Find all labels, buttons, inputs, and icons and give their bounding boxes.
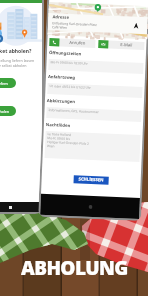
staticText: Anfahrtsweg (48, 74, 75, 81)
staticText: Paket abholen? (0, 48, 32, 55)
button[interactable]: Liefern (0, 78, 16, 88)
staticText: U1 oder 49/22 bis U1/22 Uhr (49, 84, 92, 90)
button[interactable]: SCHLIESSEN (73, 175, 109, 185)
staticText: SCHLIESSEN (78, 176, 104, 183)
staticText: Entlastung Karl-Dresden-Platz Café Wien (52, 21, 97, 31)
staticText: Mo-Fr 09:00 bis 18:00 Uhr (50, 60, 89, 66)
staticText: E-Mail (120, 42, 132, 48)
button[interactable]: Le Torte Holland Mo-Fr, 09:00 bis Heilig… (44, 131, 140, 162)
staticText: Abholen (0, 109, 10, 114)
button[interactable]: Abholen (0, 106, 16, 116)
staticText: Nachtlöden (46, 122, 71, 129)
staticText: Bestellung liefern lassen oder selbst ab… (0, 58, 35, 68)
staticText: Adresse (52, 14, 69, 21)
other: Directions (133, 23, 139, 29)
button[interactable]: U1 oder 49/22 bis U1/22 Uhr (47, 83, 143, 98)
staticText: ABHOLUNG (21, 255, 128, 281)
staticText: Abkürzungen (47, 98, 76, 105)
other: Location (94, 4, 102, 12)
staticText: Liefern (0, 81, 8, 86)
staticText: Anrufen (69, 40, 85, 47)
button[interactable]: E-Mail (98, 40, 144, 50)
button[interactable]: Informationen, GPS, Hausnummer (46, 107, 142, 122)
staticText: Öffnungszeiten (49, 50, 82, 57)
staticText: Informationen, GPS, Hausnummer (48, 108, 100, 114)
button[interactable]: Anrufen (49, 38, 95, 48)
button[interactable]: Adresse (48, 13, 147, 34)
staticText: Le Torte Holland Mo-Fr, 09:00 bis Heilig… (47, 132, 89, 150)
button[interactable]: Mo-Fr 09:00 bis 18:00 Uhr (48, 59, 144, 74)
